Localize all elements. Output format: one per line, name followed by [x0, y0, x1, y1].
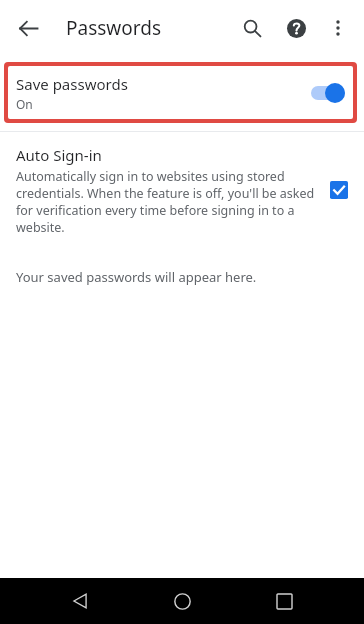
button[interactable]: Recent apps — [262, 579, 306, 623]
other: Auto Sign-in checkbox — [330, 181, 348, 199]
staticText: On — [16, 96, 33, 112]
staticText: Save passwords — [16, 74, 128, 94]
button[interactable]: Back — [58, 579, 102, 623]
staticText: Auto Sign-in — [16, 145, 102, 165]
staticText: Your saved passwords will appear here. — [16, 268, 257, 286]
button[interactable]: Save passwords — [10, 66, 351, 119]
button[interactable]: Home — [160, 579, 204, 623]
button[interactable]: Help — [274, 6, 318, 50]
staticText: Automatically sign in to websites using … — [16, 168, 316, 236]
other: Save passwords toggle — [311, 83, 345, 103]
button[interactable]: Search — [230, 6, 274, 50]
button[interactable]: Auto Sign-in — [0, 132, 364, 246]
button[interactable]: Back — [6, 6, 50, 50]
button[interactable]: More options — [318, 8, 358, 48]
staticText: Passwords — [66, 15, 162, 41]
